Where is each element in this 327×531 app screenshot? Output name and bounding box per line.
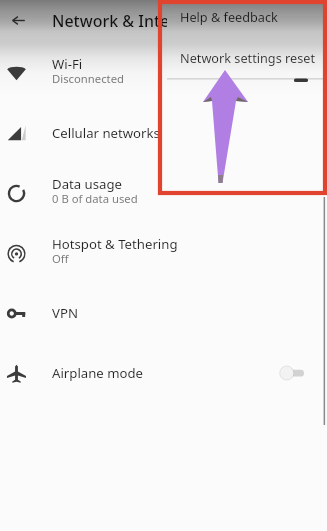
staticText: Help & feedback [180, 8, 278, 25]
button[interactable]: Data usage [0, 163, 327, 223]
button[interactable]: Help & feedback [167, 0, 327, 37]
staticText: Airplane mode [52, 364, 144, 382]
staticText: Cellular networks [52, 124, 160, 142]
staticText: Disconnected [52, 71, 124, 86]
staticText: Network & Internet [52, 10, 202, 32]
staticText: 0 B of data used [52, 191, 138, 206]
button[interactable]: VPN [0, 283, 327, 343]
button[interactable]: Wi-Fi [0, 43, 327, 103]
button[interactable]: Back [0, 0, 36, 41]
button[interactable]: Hotspot & Tethering [0, 223, 327, 283]
staticText: VPN [52, 304, 78, 322]
button[interactable]: Airplane mode [0, 343, 327, 403]
staticText: Hotspot & Tethering [52, 235, 178, 253]
button[interactable]: Cellular networks [0, 103, 327, 163]
staticText: Network settings reset [180, 49, 315, 66]
button[interactable]: Network settings reset [167, 37, 327, 78]
staticText: Wi-Fi [52, 55, 83, 73]
staticText: Data usage [52, 175, 123, 193]
staticText: Off [52, 251, 69, 266]
button[interactable]: Airplane mode toggle [269, 351, 315, 395]
